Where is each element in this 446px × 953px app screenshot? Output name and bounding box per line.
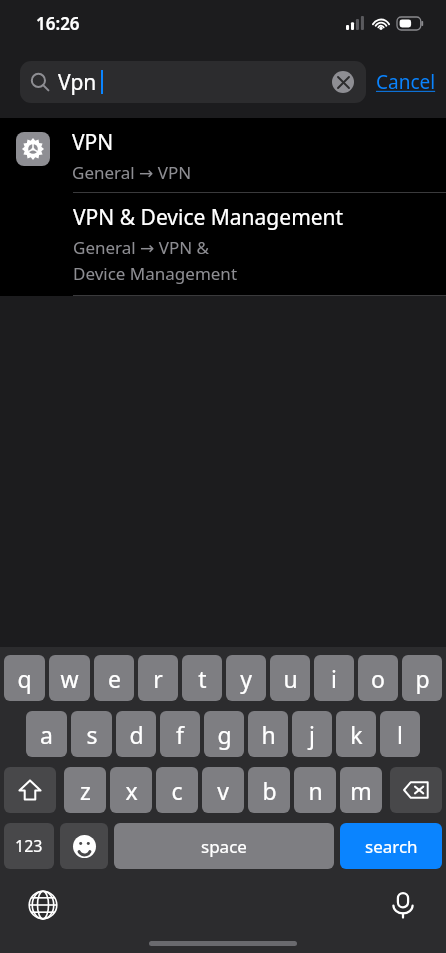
button[interactable]: o: [358, 655, 398, 701]
staticText: k: [350, 719, 363, 750]
button[interactable]: Vpn: [20, 61, 366, 103]
staticText: a: [40, 719, 53, 750]
button[interactable]: l: [380, 711, 420, 757]
staticText: f: [176, 719, 184, 750]
staticText: g: [217, 719, 232, 750]
staticText: b: [262, 775, 277, 806]
staticText: General → VPN &: [73, 236, 210, 259]
button[interactable]: Clear text: [332, 71, 354, 93]
button[interactable]: a: [26, 711, 67, 757]
staticText: Cancel: [376, 69, 436, 95]
staticText: c: [171, 775, 183, 806]
staticText: z: [80, 775, 91, 806]
staticText: d: [129, 719, 144, 750]
button[interactable]: Shift: [4, 767, 56, 813]
staticText: General → VPN: [72, 161, 192, 184]
staticText: 16:26: [36, 12, 80, 35]
staticText: p: [415, 663, 430, 694]
button[interactable]: d: [116, 711, 156, 757]
staticText: s: [86, 719, 98, 750]
button[interactable]: t: [182, 655, 222, 701]
button[interactable]: space: [114, 823, 334, 869]
button[interactable]: n: [294, 767, 336, 813]
button[interactable]: VPN & Device Management: [0, 193, 446, 295]
staticText: i: [331, 663, 337, 694]
button[interactable]: b: [248, 767, 290, 813]
staticText: r: [153, 663, 163, 694]
button[interactable]: h: [248, 711, 288, 757]
staticText: v: [217, 775, 229, 806]
button[interactable]: i: [314, 655, 354, 701]
button[interactable]: q: [4, 655, 45, 701]
button[interactable]: Cancel: [376, 69, 436, 95]
button[interactable]: search: [340, 823, 442, 869]
staticText: o: [371, 663, 385, 694]
button[interactable]: u: [270, 655, 310, 701]
button[interactable]: y: [226, 655, 266, 701]
button[interactable]: Emoji: [60, 823, 108, 869]
button[interactable]: Backspace: [390, 767, 442, 813]
staticText: y: [240, 663, 252, 694]
staticText: l: [397, 719, 403, 750]
staticText: n: [308, 775, 323, 806]
button[interactable]: Change keyboard: [22, 884, 64, 926]
button[interactable]: c: [156, 767, 198, 813]
button[interactable]: s: [71, 711, 112, 757]
staticText: 123: [15, 835, 43, 857]
button[interactable]: r: [138, 655, 178, 701]
button[interactable]: g: [204, 711, 244, 757]
staticText: VPN: [72, 128, 114, 157]
button[interactable]: m: [340, 767, 382, 813]
staticText: m: [350, 775, 372, 806]
staticText: search: [365, 835, 418, 858]
button[interactable]: e: [94, 655, 134, 701]
staticText: space: [201, 835, 247, 858]
button[interactable]: VPN: [0, 118, 446, 192]
staticText: j: [309, 719, 315, 750]
staticText: q: [17, 663, 32, 694]
button[interactable]: k: [336, 711, 376, 757]
staticText: x: [125, 775, 138, 806]
button[interactable]: 123: [4, 823, 54, 869]
button[interactable]: w: [49, 655, 90, 701]
staticText: w: [60, 663, 79, 694]
staticText: u: [283, 663, 298, 694]
staticText: Device Management: [73, 262, 238, 285]
button[interactable]: v: [202, 767, 244, 813]
staticText: h: [261, 719, 276, 750]
staticText: e: [108, 663, 121, 694]
button[interactable]: x: [110, 767, 152, 813]
button[interactable]: Dictation: [382, 884, 424, 926]
button[interactable]: j: [292, 711, 332, 757]
button[interactable]: z: [64, 767, 106, 813]
staticText: Vpn: [58, 68, 97, 97]
staticText: t: [198, 663, 207, 694]
button[interactable]: p: [402, 655, 442, 701]
button[interactable]: f: [160, 711, 200, 757]
staticText: VPN & Device Management: [73, 203, 344, 232]
